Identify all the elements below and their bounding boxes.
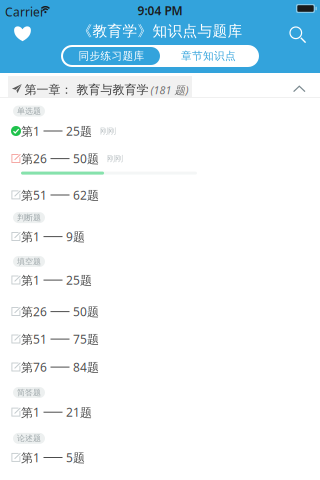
staticText: 50题 xyxy=(73,304,99,319)
staticText: 9:04 PM xyxy=(137,2,182,18)
button[interactable]: 章节知识点 xyxy=(160,47,257,65)
staticText: 25题 xyxy=(66,123,92,139)
staticText: 单选题 xyxy=(17,106,41,116)
staticText: 第1 xyxy=(21,272,40,288)
button[interactable]: Favorites xyxy=(3,19,41,47)
staticText: 填空题 xyxy=(17,257,41,266)
staticText: 62题 xyxy=(73,187,99,203)
staticText: (181 题) xyxy=(150,83,188,97)
button[interactable]: 第1 xyxy=(0,405,320,419)
staticText: 21题 xyxy=(66,404,92,420)
staticText: 50题 xyxy=(73,151,99,166)
staticText: 第76 xyxy=(21,359,47,375)
staticText: 论述题 xyxy=(17,433,41,443)
staticText: 第1 xyxy=(21,449,40,465)
staticText: 9题 xyxy=(66,229,85,244)
button[interactable]: 第26 xyxy=(0,152,320,175)
staticText: 84题 xyxy=(73,359,99,375)
staticText: 5题 xyxy=(66,449,85,465)
staticText: 刚刚 xyxy=(100,126,116,136)
staticText: 第1 xyxy=(21,404,40,420)
button[interactable]: 第1 xyxy=(0,230,320,244)
button[interactable]: Search xyxy=(279,21,317,49)
staticText: 第1 xyxy=(21,229,40,244)
staticText: 第51 xyxy=(21,331,47,347)
staticText: 第26 xyxy=(21,151,47,166)
staticText: 同步练习题库 xyxy=(78,49,144,62)
button[interactable]: 第1 xyxy=(0,124,320,138)
staticText: Carrier xyxy=(5,4,45,20)
staticText: 简答题 xyxy=(17,388,41,397)
staticText: 《教育学》知识点与题库 xyxy=(77,22,242,40)
staticText: 第26 xyxy=(21,304,47,319)
button[interactable]: 第51 xyxy=(0,332,320,346)
staticText: 75题 xyxy=(73,331,99,347)
button[interactable]: 第76 xyxy=(0,360,320,374)
button[interactable]: 第51 xyxy=(0,188,320,202)
staticText: 第一章： 教育与教育学 xyxy=(24,82,148,97)
staticText: 第51 xyxy=(21,187,47,203)
button[interactable]: 第1 xyxy=(0,273,320,287)
button[interactable]: 同步练习题库 xyxy=(63,47,160,65)
button[interactable]: 第26 xyxy=(0,305,320,319)
button[interactable]: 第1 xyxy=(0,450,320,464)
staticText: 第1 xyxy=(21,123,40,139)
button[interactable]: 第一章： 教育与教育学 xyxy=(0,73,320,98)
staticText: 刚刚 xyxy=(107,154,123,163)
staticText: 25题 xyxy=(66,272,92,288)
staticText: 章节知识点 xyxy=(181,49,236,62)
staticText: 判断题 xyxy=(17,213,41,222)
